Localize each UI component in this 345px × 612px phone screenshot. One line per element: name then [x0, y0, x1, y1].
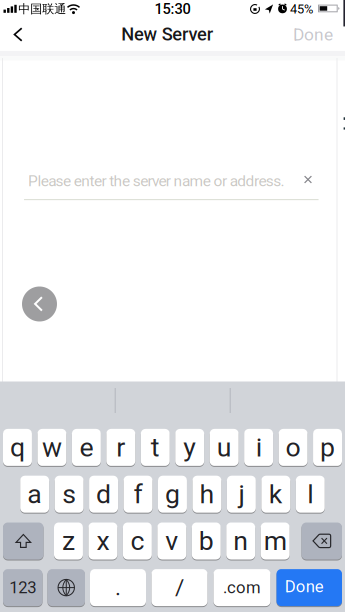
button[interactable]: n [226, 522, 255, 560]
button[interactable]: j [227, 475, 256, 513]
button[interactable]: .com [213, 569, 270, 607]
button[interactable]: w [37, 428, 66, 466]
button[interactable]: k [261, 475, 290, 513]
button[interactable]: p [313, 428, 342, 466]
staticText: t [151, 432, 160, 463]
staticText: New Server [121, 23, 213, 45]
staticText: Please enter the server name or address. [28, 172, 285, 190]
staticText: l [307, 479, 313, 510]
button[interactable]: q [3, 428, 32, 466]
button[interactable]: . [90, 569, 146, 607]
staticText: c [130, 525, 144, 557]
staticText: e [79, 432, 93, 463]
button[interactable]: x [88, 522, 117, 560]
button[interactable]: t [141, 428, 170, 466]
staticText: g [165, 479, 180, 510]
staticText: p [320, 432, 335, 463]
staticText: y [183, 432, 196, 463]
button[interactable]: Done [276, 569, 342, 607]
button[interactable]: o [279, 428, 307, 466]
button[interactable]: f [124, 475, 152, 513]
staticText: . [115, 574, 121, 601]
button[interactable]: a [20, 475, 49, 513]
button[interactable]: e [72, 428, 101, 466]
button[interactable]: s [55, 475, 83, 513]
button[interactable]: u [210, 428, 239, 466]
staticText: i [256, 432, 262, 463]
button[interactable]: / [151, 569, 207, 607]
staticText: v [165, 525, 178, 557]
staticText: r [116, 432, 125, 463]
button[interactable]: Clear text [298, 169, 318, 189]
staticText: / [175, 574, 184, 601]
button[interactable]: i [244, 428, 273, 466]
staticText: a [27, 479, 42, 510]
staticText: d [96, 479, 111, 510]
staticText: j [238, 479, 244, 510]
staticText: .com [223, 578, 261, 597]
staticText: z [62, 525, 75, 557]
button[interactable]: m [261, 522, 290, 560]
button[interactable]: d [89, 475, 118, 513]
button[interactable]: g [158, 475, 187, 513]
staticText: h [199, 479, 214, 510]
button[interactable]: b [192, 522, 221, 560]
staticText: x [96, 525, 109, 557]
button[interactable]: r [106, 428, 135, 466]
button[interactable]: y [175, 428, 204, 466]
staticText: m [264, 525, 287, 557]
staticText: n [233, 525, 248, 557]
staticText: k [269, 479, 283, 510]
button[interactable]: c [123, 522, 152, 560]
staticText: q [10, 432, 25, 463]
button[interactable]: Back [4, 21, 31, 48]
staticText: s [62, 479, 76, 510]
button[interactable]: Numbers [3, 569, 42, 607]
staticText: w [42, 432, 62, 463]
button[interactable]: z [54, 522, 83, 560]
staticText: 中国联通 [18, 2, 66, 16]
staticText: Done [285, 577, 324, 596]
staticText: Done [293, 24, 333, 45]
button[interactable]: v [157, 522, 186, 560]
button[interactable]: Back [22, 286, 57, 321]
staticText: f [133, 479, 142, 510]
button[interactable]: h [192, 475, 221, 513]
button[interactable]: l [296, 475, 325, 513]
button[interactable]: Delete [301, 522, 342, 560]
button[interactable]: Done [287, 18, 339, 51]
button[interactable]: Shift [3, 522, 43, 560]
staticText: o [286, 432, 301, 463]
staticText: 15:30 [154, 0, 190, 18]
button[interactable]: Next keyboard [47, 569, 85, 607]
staticText: 123 [9, 578, 36, 597]
staticText: b [199, 525, 214, 557]
staticText: 45% [290, 1, 313, 16]
staticText: u [217, 432, 232, 463]
